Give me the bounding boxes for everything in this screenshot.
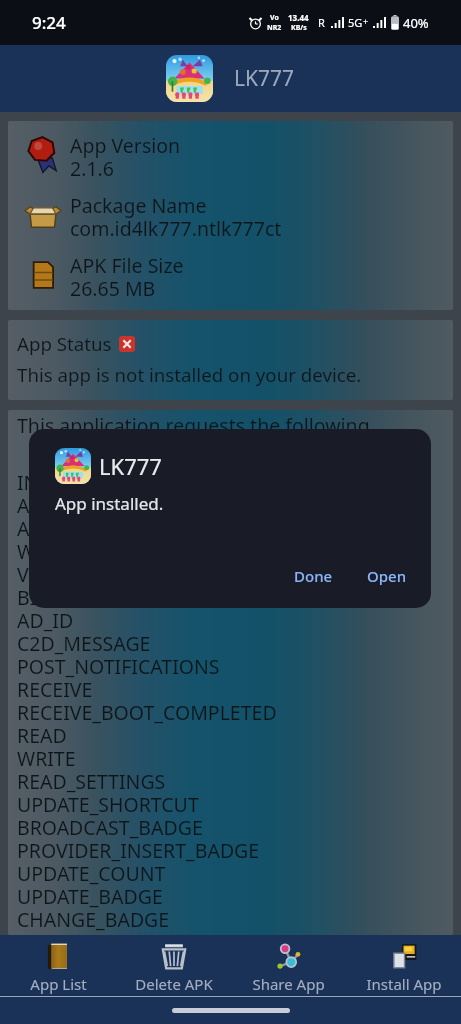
staticText: Package Name xyxy=(70,192,207,219)
staticText: + xyxy=(363,15,369,27)
staticText: 5G xyxy=(348,15,363,30)
staticText: LK777 xyxy=(234,64,295,93)
staticText: App Version xyxy=(70,132,181,159)
staticText: 9:24 xyxy=(32,11,66,34)
button[interactable]: Share App xyxy=(231,938,346,994)
staticText: VIBRATE xyxy=(17,561,93,588)
staticText: AD_ID xyxy=(17,607,74,634)
staticText: READ_SETTINGS xyxy=(17,768,166,795)
button[interactable]: App List xyxy=(0,938,116,994)
staticText: R xyxy=(318,15,325,30)
staticText: This application requests the following … xyxy=(17,412,453,439)
staticText: Vo xyxy=(270,13,279,23)
staticText: 26.65 MB xyxy=(70,275,156,302)
staticText: C2D_MESSAGE xyxy=(17,630,151,657)
staticText: com.id4lk777.ntlk777ct xyxy=(70,215,282,242)
staticText: Install App xyxy=(366,974,442,994)
button[interactable]: Done xyxy=(283,559,344,593)
staticText: WAKE_LOCK xyxy=(17,538,128,565)
staticText: RECEIVE xyxy=(17,676,93,703)
staticText: Share App xyxy=(252,974,325,994)
staticText: This app is not installed on your device… xyxy=(17,362,362,387)
staticText: Open xyxy=(367,566,407,586)
staticText: ACCESS_WIFI_STATE xyxy=(17,515,198,542)
staticText: KB/s xyxy=(291,23,307,33)
staticText: APK File Size xyxy=(70,252,184,279)
staticText: UPDATE_COUNT xyxy=(17,860,166,887)
staticText: WRITE xyxy=(17,745,76,772)
staticText: CHANGE_BADGE xyxy=(17,906,170,933)
staticText: UPDATE_SHORTCUT xyxy=(17,791,199,818)
staticText: NR2 xyxy=(267,23,282,33)
staticText: Done xyxy=(294,566,333,586)
staticText: READ xyxy=(17,722,67,749)
button[interactable]: Install App xyxy=(346,938,461,994)
staticText: LK777 xyxy=(99,451,162,481)
staticText: App installed. xyxy=(55,492,164,515)
button[interactable]: Open xyxy=(356,559,418,593)
staticText: 13.44 xyxy=(288,12,309,23)
staticText: App Status xyxy=(17,331,112,356)
staticText: BILLING xyxy=(17,584,93,611)
staticText: BROADCAST_BADGE xyxy=(17,814,203,841)
staticText: Delete APK xyxy=(135,974,213,994)
staticText: INTERNET xyxy=(17,469,109,496)
staticText: 2.1.6 xyxy=(70,155,114,182)
staticText: RECEIVE_BOOT_COMPLETED xyxy=(17,699,277,726)
staticText: PROVIDER_INSERT_BADGE xyxy=(17,837,260,864)
staticText: POST_NOTIFICATIONS xyxy=(17,653,220,680)
staticText: 40% xyxy=(403,14,429,32)
staticText: App List xyxy=(30,974,87,994)
staticText: UPDATE_BADGE xyxy=(17,883,163,910)
staticText: ACCESS_NETWORK_STATE xyxy=(17,492,250,519)
button[interactable]: Delete APK xyxy=(116,938,231,994)
